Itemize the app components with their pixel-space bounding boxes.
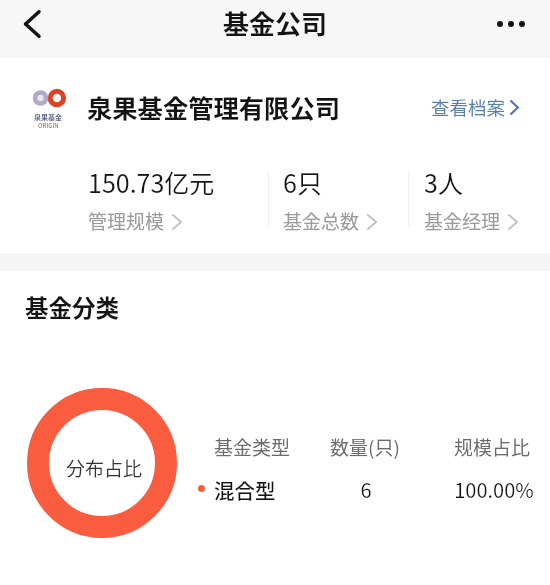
- staticText: 6只: [283, 164, 322, 200]
- button[interactable]: Back: [0, 0, 64, 58]
- staticText: 基金分类: [25, 290, 119, 324]
- staticText: 基金类型: [214, 433, 291, 461]
- staticText: 分布占比: [66, 454, 143, 482]
- staticText: 基金经理: [424, 207, 501, 235]
- staticText: 100.00%: [439, 475, 549, 504]
- staticText: 3人: [424, 164, 463, 200]
- staticText: 管理规模: [88, 207, 165, 235]
- staticText: 规模占比: [437, 433, 547, 461]
- button[interactable]: 150.73亿元: [0, 140, 178, 253]
- staticText: 泉果基金管理有限公司: [87, 89, 340, 126]
- staticText: ORIGIN: [38, 121, 59, 130]
- staticText: 6: [311, 475, 421, 504]
- staticText: 数量(只): [310, 433, 420, 461]
- staticText: 查看档案: [431, 94, 506, 121]
- button[interactable]: 6只: [270, 140, 407, 253]
- staticText: 混合型: [214, 475, 276, 505]
- staticText: 150.73亿元: [88, 164, 215, 200]
- button[interactable]: More options: [488, 6, 534, 42]
- staticText: 基金公司: [223, 4, 328, 42]
- button[interactable]: 查看档案: [431, 94, 519, 121]
- staticText: 基金总数: [283, 207, 360, 235]
- staticText: 泉果基金: [34, 112, 62, 122]
- button[interactable]: 3人: [410, 140, 550, 253]
